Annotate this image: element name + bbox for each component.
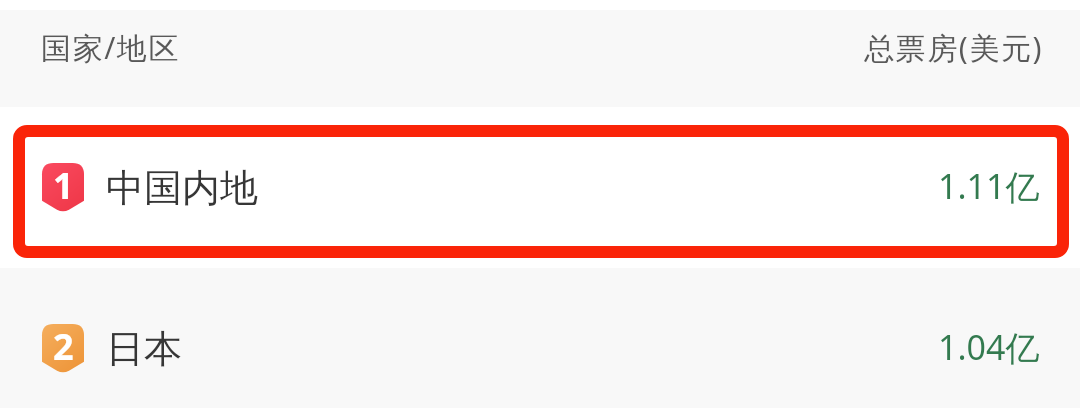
- staticText: 国家/地区: [41, 27, 181, 68]
- button[interactable]: 1: [0, 107, 1080, 268]
- staticText: 日本: [106, 325, 182, 373]
- staticText: 2: [53, 322, 74, 371]
- staticText: 1: [53, 161, 74, 210]
- staticText: 总票房(美元): [864, 27, 1044, 68]
- staticText: 1.04亿: [938, 324, 1040, 370]
- staticText: 1.11亿: [938, 163, 1040, 209]
- button[interactable]: 2: [0, 268, 1080, 408]
- staticText: 中国内地: [106, 164, 258, 212]
